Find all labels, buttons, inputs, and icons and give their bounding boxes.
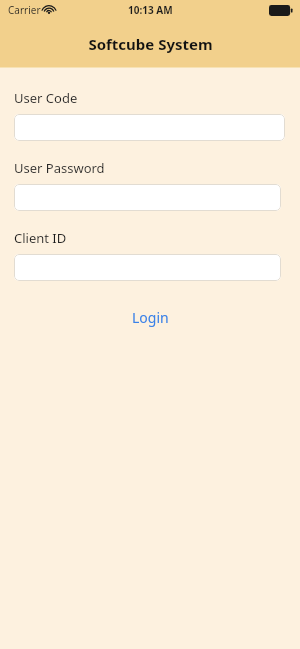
button[interactable] xyxy=(14,184,281,211)
button[interactable] xyxy=(14,114,285,141)
button[interactable] xyxy=(14,254,281,281)
staticText: User Password xyxy=(14,159,105,177)
staticText: Softcube System xyxy=(88,34,213,54)
staticText: Carrier xyxy=(8,3,41,17)
staticText: Client ID xyxy=(14,229,67,247)
staticText: Login xyxy=(132,308,169,327)
staticText: 10:13 AM xyxy=(128,3,173,17)
button[interactable]: Login xyxy=(118,303,183,332)
staticText: User Code xyxy=(14,89,78,107)
